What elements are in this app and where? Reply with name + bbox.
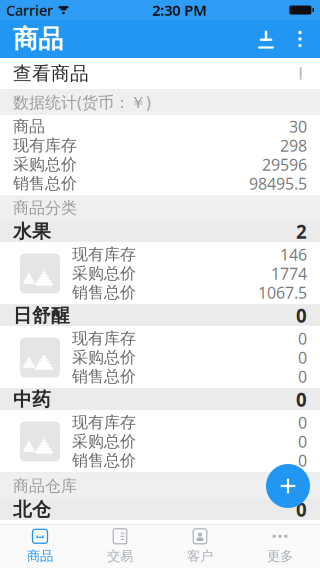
staticText: 1067.5 (258, 282, 307, 303)
staticText: 商品 (13, 117, 45, 136)
staticText: 中药 (13, 388, 51, 411)
staticText: 采购总价 (72, 264, 136, 283)
staticText: 查看商品 (13, 62, 89, 85)
staticText: 销售总价 (72, 451, 136, 470)
staticText: 0 (298, 328, 307, 349)
staticText: 销售总价 (72, 561, 136, 568)
staticText: 北仓 (13, 498, 51, 521)
staticText: 现有库存 (72, 413, 136, 432)
staticText: 现有库存 (72, 329, 136, 348)
staticText: 29596 (262, 154, 307, 175)
staticText: 0 (296, 497, 307, 522)
staticText: 0 (298, 522, 307, 543)
staticText: 采购总价 (72, 348, 136, 367)
staticText: 0 (298, 431, 307, 452)
staticText: 现有库存 (72, 523, 136, 542)
button[interactable]: 水果 (0, 221, 320, 242)
staticText: 0 (298, 347, 307, 368)
button[interactable]: 添加商品 (266, 464, 310, 508)
staticText: 采购总价 (13, 155, 77, 174)
staticText: 数据统计(货币：￥) (13, 91, 151, 113)
staticText: 水果 (13, 220, 51, 243)
staticText: 2:30 PM (152, 0, 207, 20)
staticText: 销售总价 (72, 283, 136, 302)
staticText: 销售总价 (13, 174, 77, 193)
staticText: 0 (298, 450, 307, 471)
button[interactable]: 更多选项 (284, 20, 316, 58)
staticText: 0 (296, 387, 307, 412)
button[interactable]: 导出 (248, 20, 284, 58)
button[interactable]: 更多 (240, 524, 320, 568)
staticText: 更多 (267, 548, 293, 564)
staticText: 0 (298, 412, 307, 433)
staticText: 1774 (271, 263, 307, 284)
staticText: 采购总价 (72, 542, 136, 561)
staticText: 2 (296, 219, 307, 244)
button[interactable]: 中药 (0, 389, 320, 410)
staticText: 30 (289, 116, 307, 137)
staticText: 商品 (13, 23, 63, 54)
button[interactable]: 交易 (80, 524, 160, 568)
staticText: 298 (280, 135, 307, 156)
staticText: 现有库存 (13, 136, 77, 155)
staticText: 客户 (187, 548, 213, 564)
staticText: 采购总价 (72, 432, 136, 451)
button[interactable]: 商品 (0, 524, 80, 568)
button[interactable]: 查看商品 (0, 58, 320, 89)
button[interactable]: 现有库存 (0, 520, 320, 568)
staticText: 0 (298, 366, 307, 387)
staticText: 0 (296, 303, 307, 328)
button[interactable]: 现有库存 (0, 242, 320, 305)
staticText: 现有库存 (72, 245, 136, 264)
button[interactable]: 客户 (160, 524, 240, 568)
staticText: 销售总价 (72, 367, 136, 386)
button[interactable]: 现有库存 (0, 326, 320, 389)
staticText: 146 (280, 244, 307, 265)
staticText: 商品 (27, 548, 53, 564)
button[interactable]: 日舒醒 (0, 305, 320, 326)
staticText: 商品仓库 (13, 476, 77, 496)
staticText: 商品分类 (13, 198, 77, 218)
staticText: 日舒醒 (13, 304, 70, 327)
staticText: 交易 (107, 548, 133, 564)
button[interactable]: 现有库存 (0, 410, 320, 473)
staticText: Carrier (6, 0, 53, 20)
staticText: 98495.5 (249, 173, 307, 194)
button[interactable]: 北仓 (0, 499, 320, 520)
